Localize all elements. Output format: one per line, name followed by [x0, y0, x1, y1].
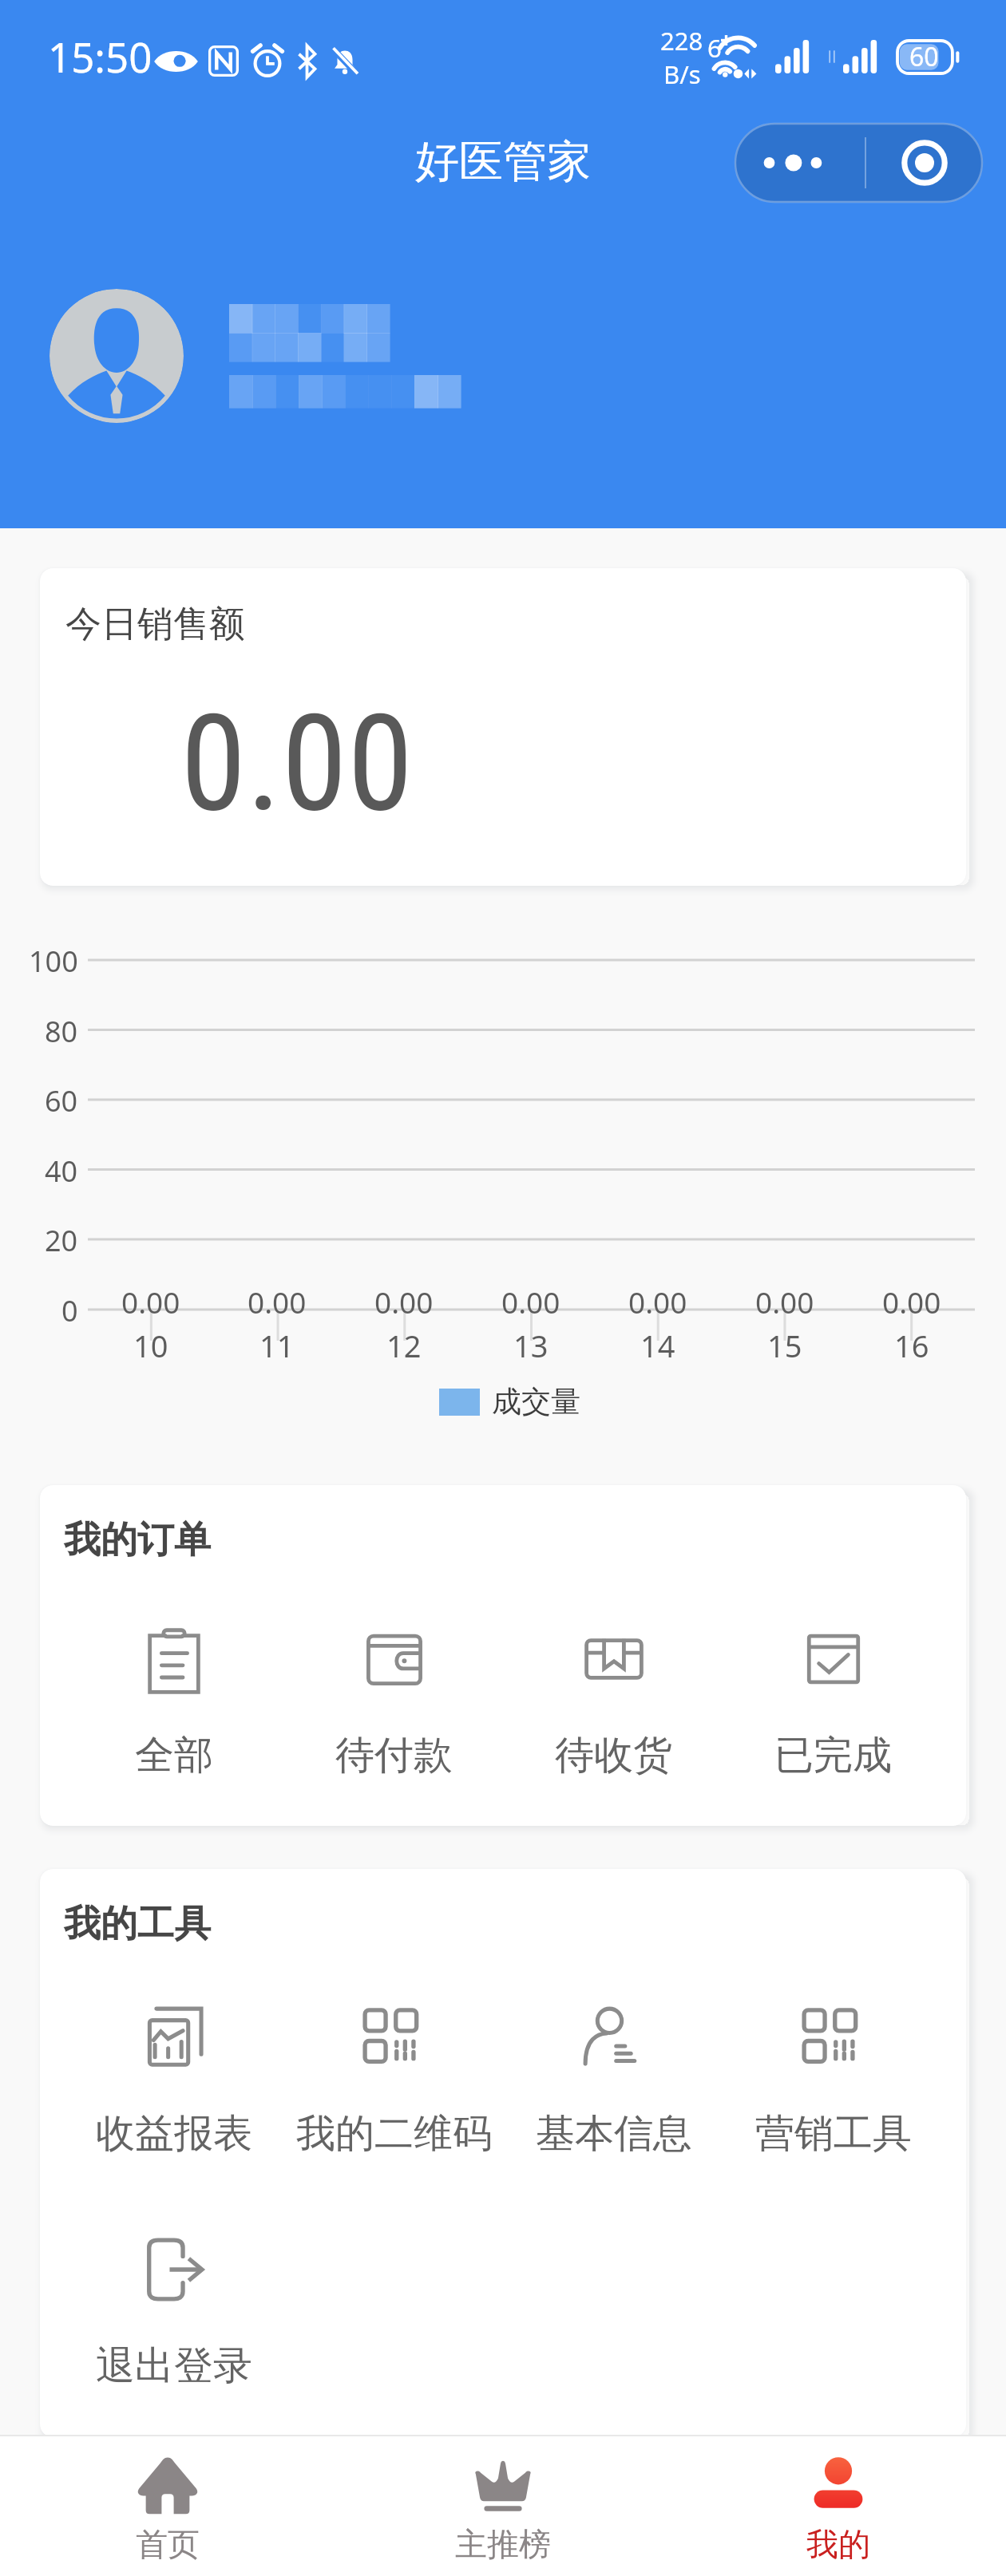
staticText: 228 [660, 24, 703, 57]
staticText: 0.00 [882, 1282, 941, 1322]
staticText: 好医管家 [415, 134, 591, 189]
staticText: 0.00 [374, 1282, 434, 1322]
button[interactable]: Close mini program [866, 123, 983, 203]
staticText: 100 [29, 942, 78, 981]
staticText: 20 [45, 1221, 78, 1260]
staticText: 15 [767, 1325, 802, 1366]
staticText: 60 [909, 39, 939, 74]
staticText: 营销工具 [755, 2109, 912, 2159]
staticText: 成交量 [492, 1383, 580, 1420]
staticText: 全部 [135, 1731, 213, 1780]
staticText: 0.00 [755, 1282, 814, 1322]
staticText: 0.00 [501, 1282, 560, 1322]
staticText: 我的工具 [64, 1901, 211, 1947]
staticText: 我的订单 [64, 1517, 211, 1563]
staticText: B/s [663, 57, 701, 91]
staticText: 12 [386, 1325, 422, 1366]
staticText: 10 [133, 1325, 168, 1366]
button[interactable]: 待收货 [504, 1622, 723, 1780]
staticText: 16 [894, 1325, 929, 1366]
staticText: 14 [640, 1325, 675, 1366]
staticText: 我的 [806, 2524, 870, 2564]
staticText: 待付款 [335, 1731, 453, 1780]
button[interactable]: 首页 [0, 2436, 335, 2564]
staticText: 首页 [136, 2524, 200, 2564]
staticText: 退出登录 [96, 2341, 252, 2391]
button[interactable]: 基本信息 [504, 2001, 723, 2159]
staticText: 60 [45, 1081, 78, 1120]
button[interactable]: 待付款 [284, 1622, 504, 1780]
staticText: 13 [513, 1325, 549, 1366]
button[interactable]: 我的二维码 [284, 2001, 504, 2159]
button[interactable]: 主推榜 [335, 2436, 671, 2564]
staticText: 0.00 [248, 1282, 307, 1322]
staticText: 80 [45, 1012, 78, 1051]
button[interactable]: 今日销售额 [40, 568, 966, 886]
staticText: 主推榜 [455, 2524, 551, 2564]
staticText: 0.00 [180, 685, 414, 842]
staticText: 11 [259, 1325, 295, 1366]
button[interactable]: 我的 [671, 2436, 1006, 2564]
staticText: 40 [45, 1152, 78, 1191]
button[interactable]: 收益报表 [64, 2001, 284, 2159]
button[interactable]: 全部 [64, 1622, 284, 1780]
button[interactable]: Profile avatar [50, 283, 497, 429]
staticText: 6 [707, 31, 722, 65]
button[interactable]: 退出登录 [64, 2233, 283, 2391]
staticText: 0.00 [121, 1282, 180, 1322]
staticText: 已完成 [774, 1731, 892, 1780]
staticText: 我的二维码 [296, 2109, 492, 2159]
button[interactable]: More [735, 123, 865, 203]
staticText: 0.00 [628, 1282, 687, 1322]
staticText: 基本信息 [536, 2109, 692, 2159]
button[interactable]: 营销工具 [723, 2001, 943, 2159]
staticText: 今日销售额 [65, 602, 245, 647]
button[interactable]: 已完成 [723, 1622, 943, 1780]
other: Profile avatar [50, 289, 184, 423]
staticText: 15:50 [48, 29, 152, 84]
staticText: 0 [61, 1291, 78, 1330]
staticText: 待收货 [555, 1731, 672, 1780]
staticText: 收益报表 [96, 2109, 252, 2159]
